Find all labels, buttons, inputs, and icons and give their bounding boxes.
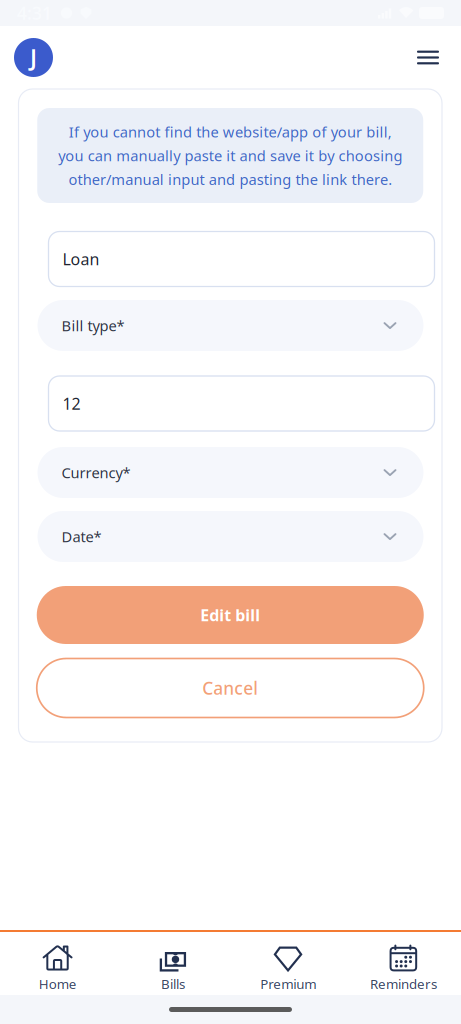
staticText: other/manual input and pasting the link …: [68, 169, 392, 189]
staticText: Bills: [161, 975, 185, 993]
staticText: Loan: [62, 248, 99, 270]
staticText: Edit bill: [200, 604, 260, 626]
staticText: Bill type*: [61, 316, 124, 335]
staticText: you can manually paste it and save it by…: [58, 146, 402, 165]
button[interactable]: Bills: [115, 932, 230, 995]
staticText: Cancel: [202, 676, 258, 699]
button[interactable]: Date*: [37, 511, 423, 562]
button[interactable]: Menu: [406, 35, 450, 79]
staticText: J: [30, 42, 37, 72]
staticText: Premium: [260, 975, 316, 993]
staticText: Reminders: [370, 975, 437, 993]
button[interactable]: Bill type*: [37, 300, 423, 351]
staticText: If you cannot find the website/app of yo…: [69, 122, 392, 142]
button[interactable]: Cancel: [37, 658, 424, 717]
button[interactable]: Edit bill: [37, 586, 424, 644]
staticText: 12: [62, 393, 80, 414]
button[interactable]: Premium: [230, 932, 346, 995]
button[interactable]: Currency*: [37, 447, 423, 498]
staticText: Date*: [61, 527, 101, 546]
button[interactable]: Profile: [14, 38, 53, 77]
staticText: Home: [39, 975, 77, 993]
staticText: Currency*: [61, 463, 130, 482]
button[interactable]: Reminders: [346, 932, 461, 995]
button[interactable]: Home: [0, 932, 115, 995]
